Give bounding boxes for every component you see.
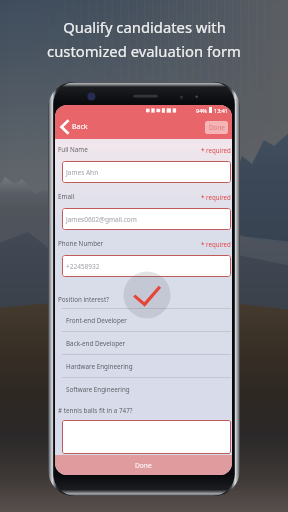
staticText: Back (72, 122, 88, 132)
staticText: Phone Number (58, 239, 104, 248)
staticText: Email (58, 192, 75, 201)
button[interactable]: Hardware Engineering (58, 354, 231, 377)
staticText: Done (209, 123, 225, 132)
staticText: * required (201, 240, 231, 248)
staticText: customized evaluation form (47, 41, 241, 61)
staticText: Position interest? (58, 295, 109, 304)
button[interactable] (62, 420, 231, 454)
button[interactable]: Front-end Developer (58, 308, 231, 331)
staticText: Hardware Engineering (66, 362, 133, 371)
staticText: Full Name (58, 145, 88, 154)
staticText: +22458932 (66, 262, 100, 271)
staticText: # tennis balls fit in a 747? (58, 406, 133, 415)
staticText: * required (201, 146, 231, 154)
button[interactable]: Back (55, 118, 92, 136)
staticText: 94% (196, 107, 207, 114)
staticText: james0602@gmail.com (66, 215, 137, 224)
staticText: Qualify candidates with (63, 17, 226, 37)
staticText: 13:41 (214, 107, 229, 114)
staticText: * required (201, 193, 231, 201)
button[interactable]: james0602@gmail.com (62, 208, 231, 230)
button[interactable]: Done (205, 121, 228, 134)
button[interactable]: Done (55, 455, 232, 475)
staticText: Front-end Developer (66, 316, 127, 325)
button[interactable]: Back-end Developer (58, 331, 231, 354)
button[interactable]: Software Engineering (58, 377, 231, 400)
button[interactable]: +22458932 (62, 255, 231, 277)
staticText: Back-end Developer (66, 339, 126, 348)
staticText: Software Engineering (66, 385, 130, 394)
staticText: Done (135, 461, 152, 470)
staticText: James Ahn (66, 168, 99, 177)
button[interactable]: James Ahn (62, 161, 231, 183)
